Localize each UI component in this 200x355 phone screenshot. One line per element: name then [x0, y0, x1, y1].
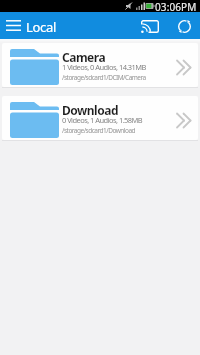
staticText: 0 Videos, 1 Audios, 1.58MB [62, 115, 143, 125]
staticText: 1 Videos, 0 Audios, 14.31MB [62, 62, 146, 72]
staticText: /storage/sdcard1/DCIM/Camera [62, 73, 146, 82]
button[interactable] [139, 12, 161, 39]
button[interactable] [175, 12, 194, 39]
staticText: 03:06PM [155, 0, 197, 12]
staticText: Download [62, 102, 118, 118]
button[interactable]: Camera [2, 43, 198, 87]
staticText: Camera [62, 49, 106, 65]
button[interactable] [0, 12, 26, 39]
staticText: /storage/sdcard1/Download [62, 126, 136, 135]
button[interactable]: Download [2, 96, 198, 140]
staticText: Local [26, 18, 57, 36]
